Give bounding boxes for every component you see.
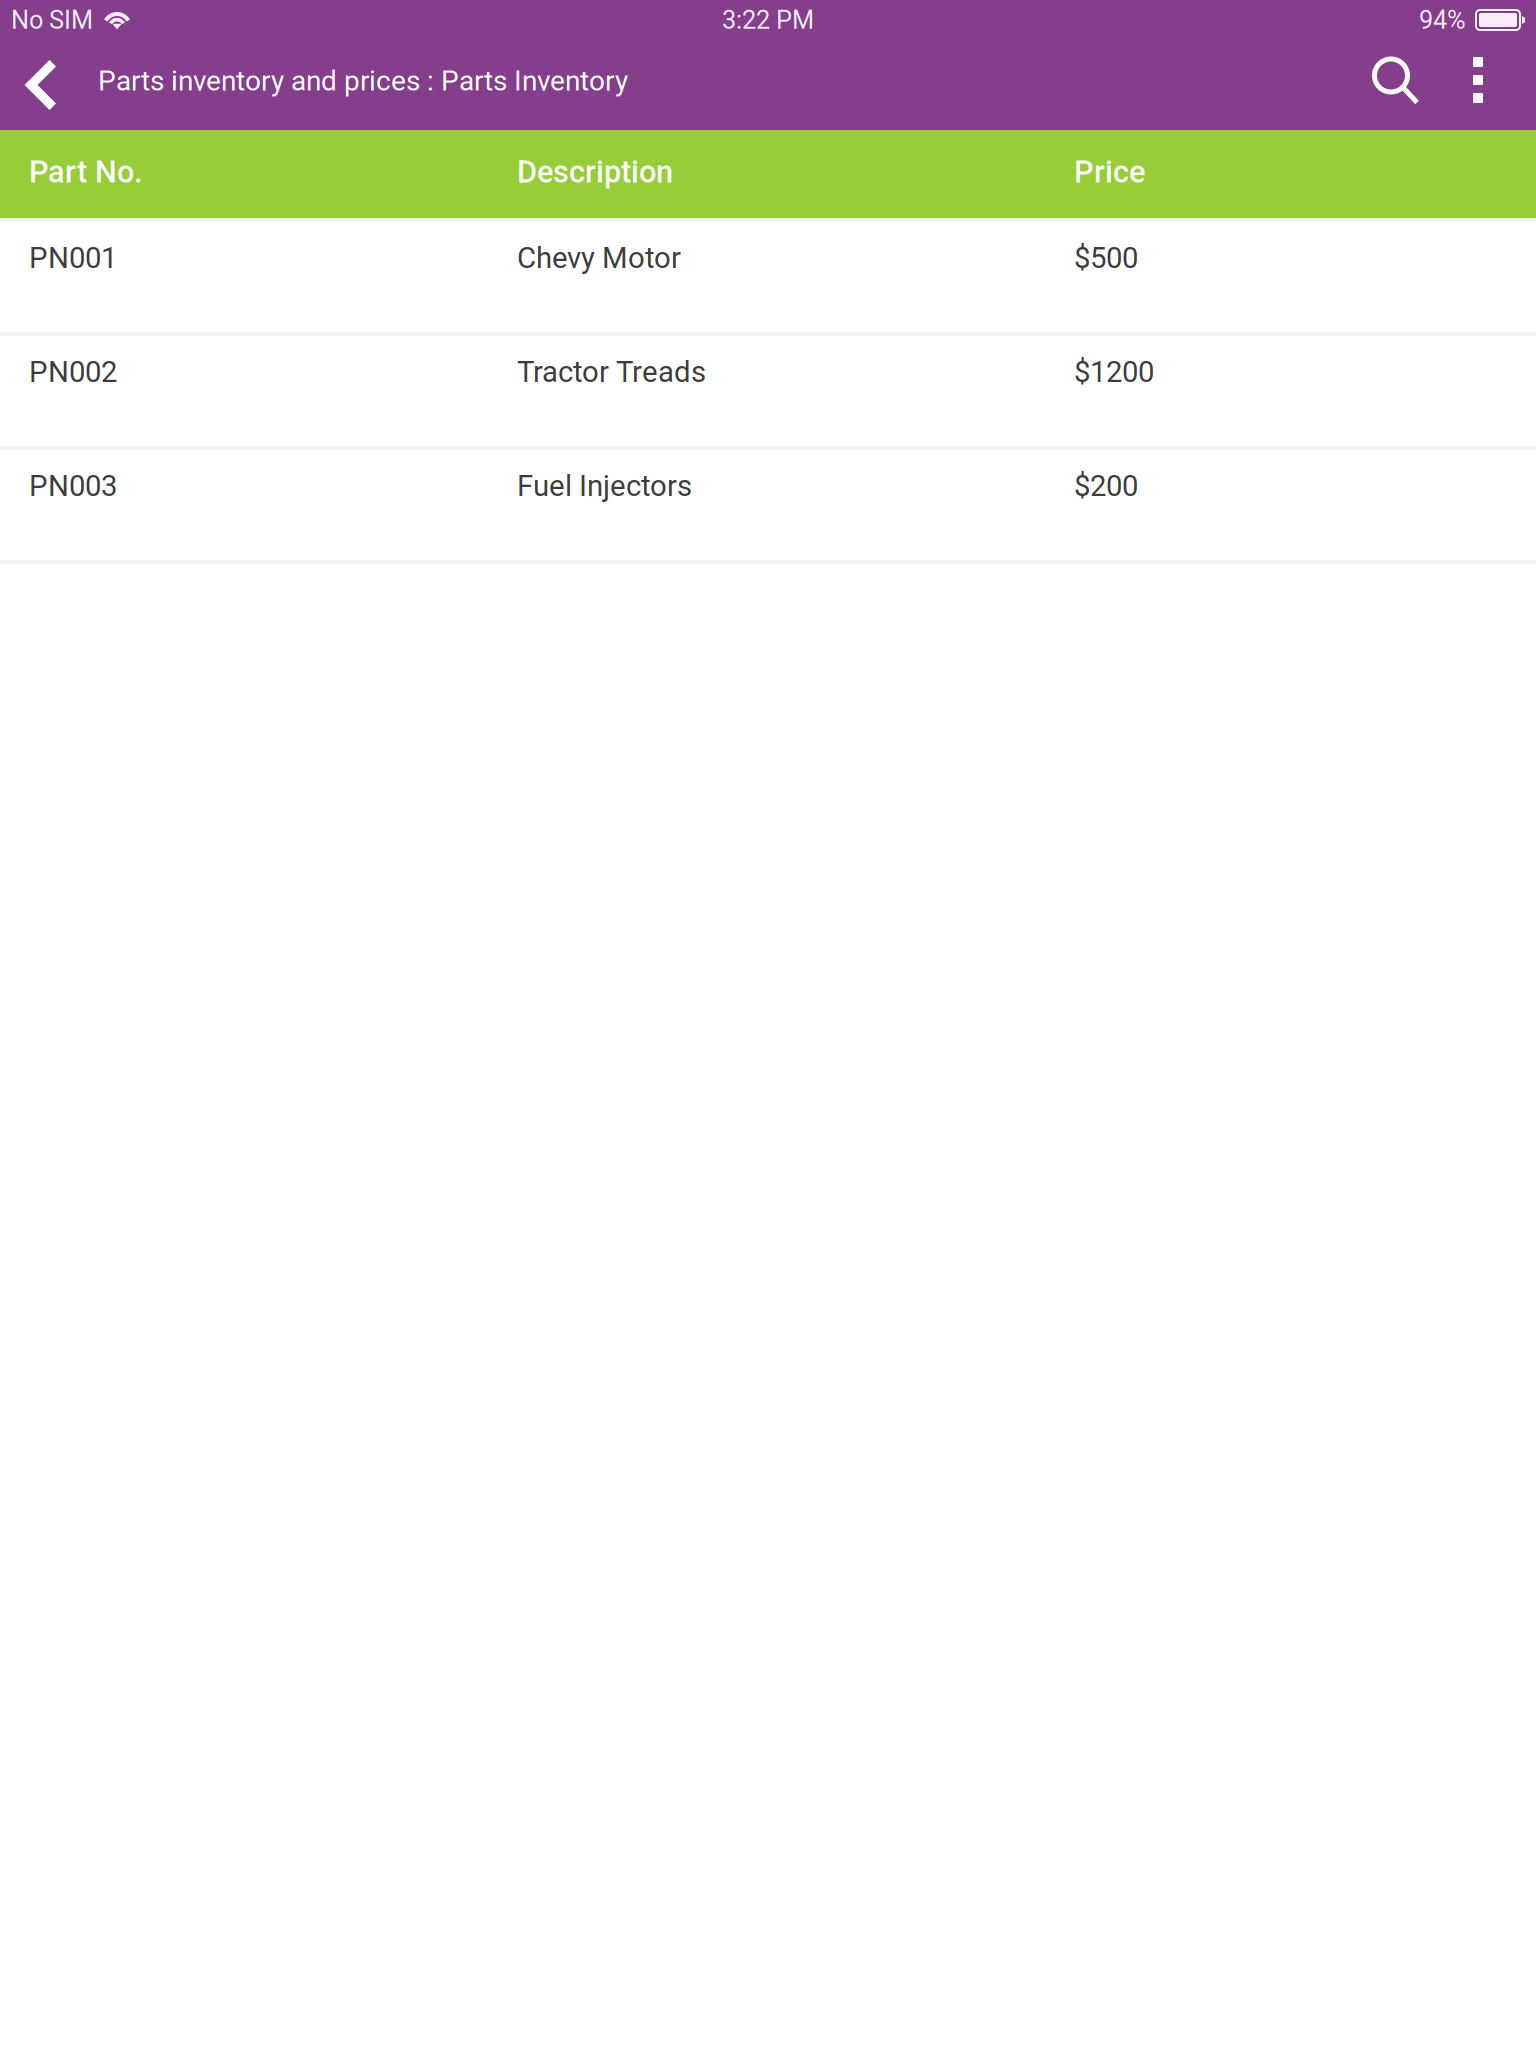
button[interactable]: Back [0,40,74,130]
staticText: Chevy Motor [517,241,681,275]
staticText: Tractor Treads [517,355,706,389]
staticText: 3:22 PM [722,5,814,35]
staticText: $500 [1074,241,1138,275]
staticText: Price [1074,154,1145,190]
staticText: PN001 [29,241,117,275]
button[interactable]: PN001 [0,218,1536,332]
staticText: Part No. [29,154,143,190]
button[interactable]: PN002 [0,332,1536,446]
staticText: Fuel Injectors [517,469,692,503]
staticText: Parts inventory and prices : Parts Inven… [98,65,628,97]
staticText: 94% [1419,5,1466,35]
button[interactable]: PN003 [0,446,1536,560]
staticText: PN003 [29,469,117,503]
staticText: Description [517,154,673,190]
button[interactable]: Search [1372,40,1473,130]
staticText: PN002 [29,355,117,389]
staticText: No SIM [11,5,93,35]
staticText: $200 [1074,469,1138,503]
staticText: $1200 [1074,355,1154,389]
button[interactable]: More options [1473,40,1536,130]
